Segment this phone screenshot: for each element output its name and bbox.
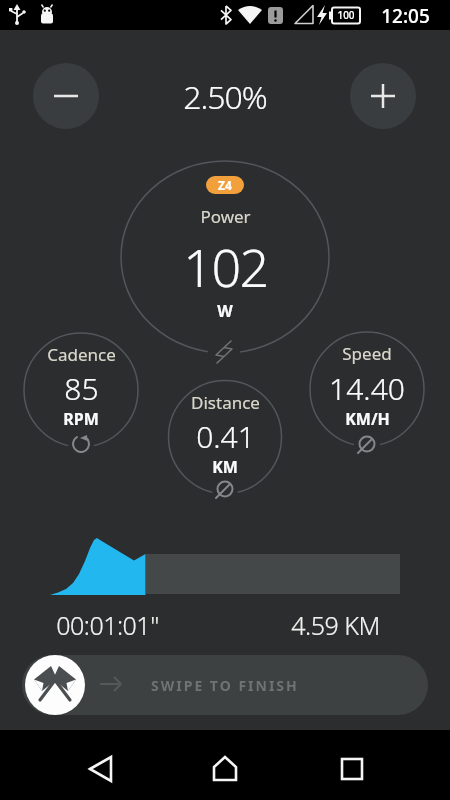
- staticText: 14.40: [329, 368, 405, 408]
- button[interactable]: [350, 63, 416, 129]
- staticText: 4.59 KM: [291, 608, 380, 642]
- staticText: 12:05: [381, 3, 430, 27]
- staticText: 100: [337, 8, 355, 22]
- staticText: Speed: [342, 342, 392, 365]
- staticText: Z4: [218, 177, 232, 193]
- staticText: Cadence: [47, 343, 116, 366]
- button[interactable]: [25, 655, 85, 715]
- staticText: SWIPE TO FINISH: [151, 676, 299, 695]
- staticText: KM: [212, 456, 238, 478]
- button[interactable]: [33, 63, 99, 129]
- staticText: RPM: [63, 408, 99, 430]
- staticText: 0.41: [196, 416, 255, 456]
- button[interactable]: SWIPE TO FINISH: [22, 655, 428, 715]
- staticText: KM/H: [345, 408, 390, 430]
- staticText: 00:01:01": [56, 608, 159, 642]
- staticText: Power: [200, 205, 251, 228]
- staticText: 85: [64, 368, 99, 408]
- staticText: W: [217, 300, 233, 322]
- staticText: Distance: [191, 391, 260, 414]
- staticText: 2.50%: [183, 75, 267, 119]
- staticText: 102: [183, 231, 268, 295]
